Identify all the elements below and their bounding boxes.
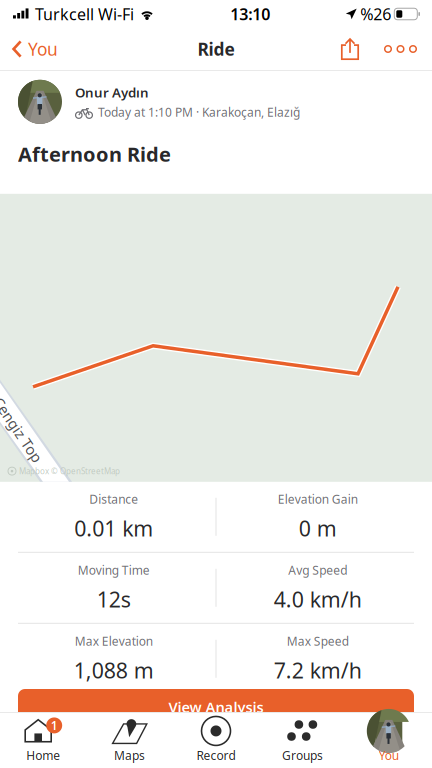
staticText: 13:10 (230, 3, 270, 25)
staticText: %26 (360, 3, 391, 25)
staticText: 0.01 km (74, 514, 153, 542)
button[interactable]: Share (326, 28, 374, 70)
staticText: Onur Aydın (75, 83, 149, 101)
button[interactable]: More options (374, 28, 427, 70)
staticText: Afternoon Ride (18, 141, 171, 167)
staticText: Turkcell Wi-Fi (35, 3, 134, 25)
staticText: Mapbox © OpenStreetMap (19, 466, 120, 476)
staticText: Avg Speed (288, 562, 347, 578)
staticText: 4.0 km/h (274, 585, 362, 613)
button[interactable]: Onur Aydın profile photo (18, 80, 62, 124)
button[interactable]: 1 (0, 713, 86, 767)
staticText: Elevation Gain (278, 491, 358, 507)
button[interactable]: Maps (86, 713, 173, 767)
staticText: Cengiz Top (0, 420, 55, 440)
staticText: 1 (51, 717, 58, 733)
button[interactable]: You (0, 28, 68, 70)
staticText: Moving Time (78, 562, 150, 578)
staticText: Maps (114, 747, 145, 763)
staticText: You (379, 747, 399, 763)
staticText: Record (196, 747, 235, 763)
button[interactable]: Record (173, 713, 259, 767)
button[interactable]: View Analysis (18, 689, 414, 725)
button[interactable]: You (346, 713, 432, 767)
staticText: 7.2 km/h (274, 656, 362, 684)
staticText: Home (26, 747, 60, 763)
staticText: 0 m (299, 514, 337, 542)
staticText: 1,088 m (74, 656, 154, 684)
button[interactable]: Groups (259, 713, 346, 767)
staticText: Max Elevation (75, 633, 153, 649)
staticText: 12s (97, 585, 131, 613)
staticText: Today at 1:10 PM · Karakoçan, Elazığ (98, 104, 300, 120)
staticText: Distance (89, 491, 138, 507)
staticText: Groups (282, 747, 323, 763)
staticText: Max Speed (287, 633, 349, 649)
staticText: You (28, 37, 58, 60)
staticText: Ride (197, 37, 234, 60)
staticText: View Analysis (168, 697, 263, 717)
